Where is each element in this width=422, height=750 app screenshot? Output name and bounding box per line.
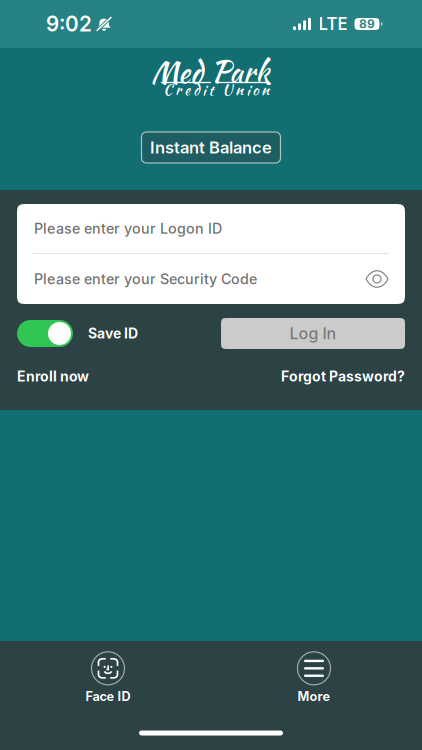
staticText: Forgot Password? (281, 368, 405, 385)
staticText: LTE (318, 14, 347, 34)
staticText: Save ID (88, 325, 138, 342)
button[interactable]: Forgot Password? (281, 368, 405, 385)
staticText: 89 (359, 17, 375, 31)
button[interactable]: Log In (221, 318, 405, 349)
button[interactable]: Please enter your Logon ID (17, 204, 405, 253)
staticText: Please enter your Logon ID (34, 220, 222, 237)
staticText: Instant Balance (150, 137, 272, 157)
staticText: Enroll now (17, 368, 89, 385)
button[interactable]: Instant Balance (141, 132, 280, 163)
button[interactable]: Enroll now (17, 368, 89, 385)
staticText: Please enter your Security Code (34, 270, 257, 288)
staticText: 9:02 (46, 11, 92, 36)
staticText: Log In (289, 324, 336, 343)
button[interactable]: More (254, 652, 374, 704)
button[interactable]: Please enter your Security Code (17, 254, 405, 304)
button[interactable]: Save ID (17, 320, 138, 347)
staticText: Face ID (85, 689, 130, 704)
staticText: Med (151, 51, 203, 94)
staticText: Park (211, 50, 270, 93)
button[interactable]: Face ID (48, 652, 168, 704)
staticText: C r e d i t U n i o n (163, 79, 269, 100)
staticText: More (297, 689, 330, 704)
